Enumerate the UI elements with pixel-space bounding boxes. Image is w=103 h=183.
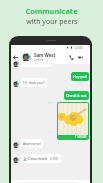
staticText: Hey pal! bbox=[73, 74, 87, 79]
button[interactable]: Download bbox=[21, 154, 61, 163]
staticText: Communicate bbox=[25, 6, 78, 16]
staticText: Awesome! bbox=[23, 141, 41, 146]
button[interactable]: Video call bbox=[76, 53, 85, 62]
staticText: 12:00 bbox=[74, 45, 83, 50]
staticText: Check it out bbox=[66, 93, 87, 98]
staticText: 11:05 AM bbox=[75, 135, 87, 139]
button[interactable]: Call bbox=[67, 53, 76, 62]
staticText: Hi, how you? bbox=[23, 80, 45, 85]
button[interactable]: Check it out bbox=[64, 91, 89, 100]
button[interactable]: Awesome! bbox=[21, 139, 43, 148]
staticText: with your peers bbox=[26, 17, 78, 27]
button[interactable]: 11:05 AM bbox=[58, 103, 88, 139]
staticText: 8 MB bbox=[50, 156, 59, 161]
staticText: Online bbox=[34, 58, 44, 62]
button[interactable]: Hey pal! bbox=[71, 72, 89, 81]
staticText: Sam West bbox=[34, 52, 56, 58]
staticText: Download bbox=[28, 156, 48, 161]
button[interactable]: Back bbox=[11, 53, 20, 62]
button[interactable]: Hi, how you? bbox=[21, 78, 47, 87]
